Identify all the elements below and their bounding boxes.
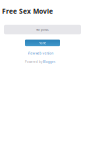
staticText: No posts. [36, 28, 49, 31]
button[interactable]: View web version [0, 51, 81, 55]
staticText: View web version [27, 51, 53, 55]
button[interactable]: Powered by [0, 60, 81, 64]
staticText: Blogger. [43, 60, 56, 64]
staticText: Free Sex Movie [2, 7, 53, 16]
staticText: Home [38, 41, 46, 45]
button[interactable]: Home [25, 40, 60, 46]
staticText: Powered by [25, 60, 42, 64]
